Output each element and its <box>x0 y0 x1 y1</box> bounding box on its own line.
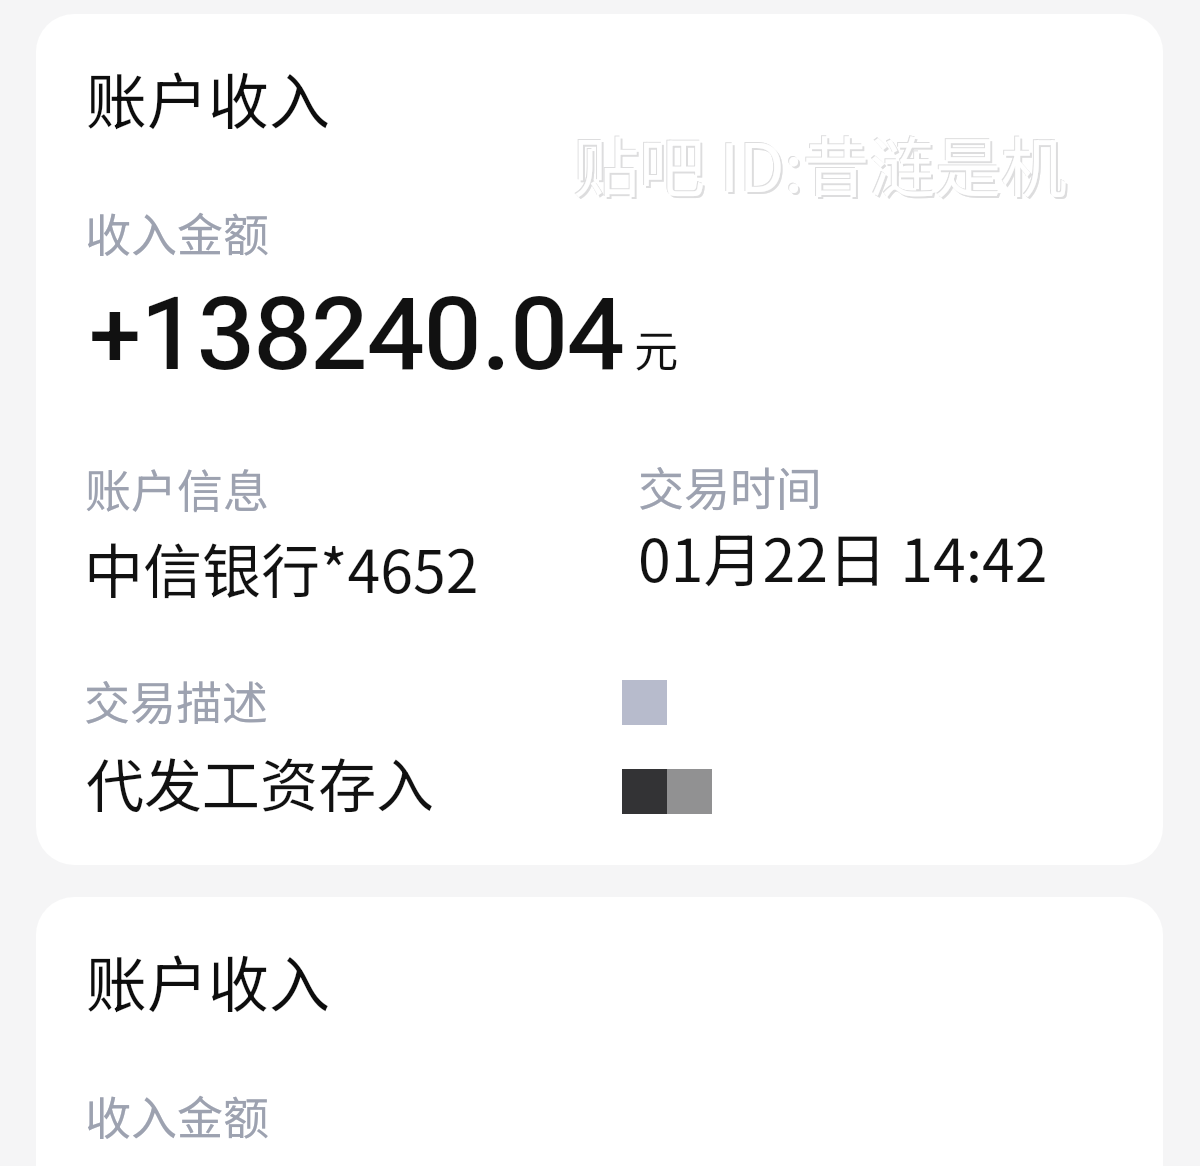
staticText: +138240.04 <box>89 276 625 394</box>
staticText: 账户收入 <box>86 53 331 141</box>
staticText: 贴吧 ID:昔涟是机 <box>575 117 1069 213</box>
other: 贴吧 ID:昔涟是机 <box>0 0 494 96</box>
staticText: 账户收入 <box>86 936 331 1024</box>
staticText: 交易时间 <box>638 453 822 520</box>
staticText: 贴吧 ID:昔涟是机 <box>573 115 1067 211</box>
staticText: 贴吧 ID:昔涟是机 <box>572 114 1066 210</box>
staticText: 收入金额 <box>85 1082 269 1149</box>
staticText: 代发工资存入 <box>86 740 435 824</box>
staticText: 收入金额 <box>85 199 269 266</box>
staticText: 中信银行*4652 <box>84 525 479 610</box>
staticText: 交易描述 <box>84 667 268 734</box>
staticText: 元 <box>634 316 678 380</box>
button[interactable]: 账户收入 <box>36 897 1163 1166</box>
staticText: 01月22日 14:42 <box>638 514 1048 599</box>
staticText: 账户信息 <box>85 455 269 522</box>
button[interactable]: 账户收入 <box>36 14 1163 865</box>
